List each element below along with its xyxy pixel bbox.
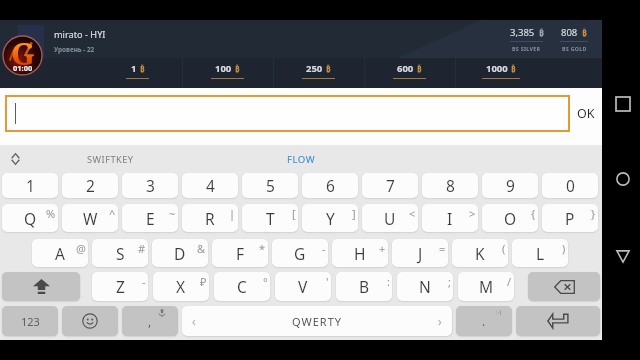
staticText: , xyxy=(148,313,152,329)
button[interactable]: T xyxy=(242,204,298,232)
button[interactable]: Back xyxy=(610,232,636,281)
staticText: . xyxy=(482,313,486,329)
button[interactable]: Expand suggestions xyxy=(6,150,24,168)
button[interactable]: B xyxy=(336,272,392,301)
button[interactable]: 8 xyxy=(422,173,478,198)
button[interactable]: SWIFTKEY xyxy=(87,153,134,166)
staticText: BS SILVER xyxy=(512,45,541,52)
staticText: ~ xyxy=(169,206,176,221)
staticText: Уровень - 22 xyxy=(54,45,95,54)
button[interactable]: U xyxy=(362,204,418,232)
button[interactable]: 1 xyxy=(92,58,182,88)
button[interactable]: 9 xyxy=(482,173,538,198)
staticText: | xyxy=(229,206,236,221)
button[interactable]: N xyxy=(397,272,453,301)
button[interactable]: Z xyxy=(92,272,148,301)
button[interactable]: Backspace xyxy=(528,272,600,301)
button[interactable]: W xyxy=(62,204,118,232)
button[interactable]: 600 xyxy=(364,58,455,88)
button[interactable]: 7 xyxy=(362,173,418,198)
button[interactable]: Home xyxy=(610,155,636,203)
button[interactable]: Period xyxy=(456,306,512,336)
staticText: A xyxy=(55,243,65,264)
staticText: ‹ xyxy=(192,313,196,329)
button[interactable]: C xyxy=(214,272,270,301)
button[interactable]: F xyxy=(212,239,268,267)
button[interactable]: E xyxy=(122,204,178,232)
button[interactable]: 123 xyxy=(2,306,58,336)
button[interactable]: Comma xyxy=(122,306,178,336)
staticText: ₽ xyxy=(200,274,207,289)
button[interactable]: L xyxy=(512,239,568,267)
staticText: I xyxy=(447,208,453,229)
staticText: ₿ xyxy=(539,27,543,39)
staticText: P xyxy=(565,208,575,229)
button[interactable]: A xyxy=(32,239,88,267)
button[interactable]: H xyxy=(332,239,388,267)
staticText: 250 xyxy=(306,62,323,75)
staticText: T xyxy=(266,208,275,229)
button[interactable]: Enter xyxy=(516,306,600,336)
button[interactable]: 250 xyxy=(273,58,364,88)
staticText: - xyxy=(142,274,146,289)
button[interactable]: 6 xyxy=(302,173,358,198)
staticText: J xyxy=(418,243,423,264)
staticText: 1 xyxy=(131,62,137,75)
button[interactable]: Q xyxy=(2,204,58,232)
staticText: ₿ xyxy=(140,63,145,74)
button[interactable]: G xyxy=(272,239,328,267)
staticText: ° xyxy=(263,274,268,289)
button[interactable]: I xyxy=(422,204,478,232)
button[interactable]: FLOW xyxy=(287,153,316,166)
staticText: 808 xyxy=(561,26,578,39)
staticText: ₿ xyxy=(326,63,331,74)
staticText: # xyxy=(138,241,146,256)
staticText: BS GOLD xyxy=(562,45,587,52)
button[interactable]: J xyxy=(392,239,448,267)
staticText: 6 xyxy=(326,175,335,196)
staticText: L xyxy=(536,243,545,264)
button[interactable]: Emoji xyxy=(62,306,118,336)
button[interactable]: X xyxy=(153,272,209,301)
staticText: 5 xyxy=(266,175,275,196)
button[interactable]: P xyxy=(542,204,598,232)
button[interactable]: 5 xyxy=(242,173,298,198)
staticText: 4 xyxy=(206,175,215,196)
button[interactable]: M xyxy=(458,272,514,301)
staticText: > xyxy=(469,206,476,221)
staticText: 600 xyxy=(397,62,414,75)
button[interactable] xyxy=(7,97,568,130)
staticText: :-) xyxy=(496,308,502,316)
button[interactable]: 4 xyxy=(182,173,238,198)
button[interactable]: 1000 xyxy=(455,58,546,88)
button[interactable]: O xyxy=(482,204,538,232)
staticText: / xyxy=(507,274,512,289)
button[interactable]: Space xyxy=(182,306,452,336)
button[interactable]: 2 xyxy=(62,173,118,198)
button[interactable]: V xyxy=(275,272,331,301)
staticText: { xyxy=(531,206,536,221)
staticText: E xyxy=(146,208,155,229)
button[interactable]: Shift xyxy=(2,272,80,301)
staticText: FLOW xyxy=(287,153,316,166)
button[interactable]: K xyxy=(452,239,508,267)
button[interactable]: 0 xyxy=(542,173,598,198)
button[interactable]: S xyxy=(92,239,148,267)
staticText: SWIFTKEY xyxy=(87,153,134,166)
staticText: B xyxy=(359,276,370,297)
staticText: U xyxy=(384,208,396,229)
staticText: 3,385 xyxy=(510,26,535,39)
staticText: G xyxy=(11,32,35,73)
button[interactable]: Recents xyxy=(610,79,636,128)
staticText: N xyxy=(419,276,431,297)
button[interactable]: R xyxy=(182,204,238,232)
staticText: O xyxy=(504,208,517,229)
button[interactable]: Profile xyxy=(2,35,43,76)
staticText: W xyxy=(83,208,98,229)
button[interactable]: D xyxy=(152,239,208,267)
button[interactable]: 3 xyxy=(122,173,178,198)
button[interactable]: Y xyxy=(302,204,358,232)
button[interactable]: 1 xyxy=(2,173,58,198)
button[interactable]: 100 xyxy=(182,58,273,88)
staticText: M xyxy=(479,276,494,297)
